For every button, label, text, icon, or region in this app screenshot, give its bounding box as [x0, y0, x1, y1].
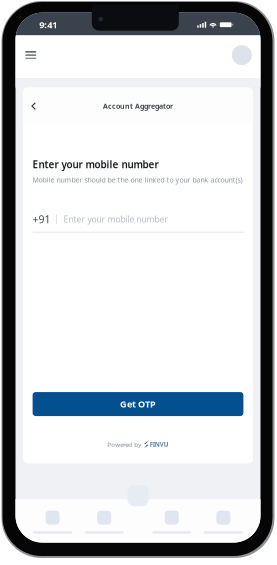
staticText: +91 [33, 212, 51, 226]
button[interactable]: Accounts [78, 511, 130, 534]
staticText: Enter your mobile number [33, 158, 159, 171]
button[interactable]: Profile [198, 511, 249, 534]
button[interactable]: Profile [229, 42, 255, 68]
staticText: Account Aggregator [103, 101, 173, 111]
staticText: Get OTP [120, 398, 156, 410]
button[interactable]: Home [27, 511, 78, 534]
staticText: Powered by [107, 440, 141, 449]
staticText: FINVU [150, 440, 169, 449]
button[interactable]: Cards [146, 511, 198, 534]
button[interactable]: Back [26, 96, 42, 116]
button[interactable]: Scan [127, 485, 148, 506]
button[interactable]: Get OTP [33, 392, 243, 416]
staticText: Mobile number should be the one linked t… [33, 175, 243, 184]
staticText: Enter your mobile number [63, 213, 168, 225]
staticText: 9:41 [39, 18, 57, 31]
button[interactable]: Menu [20, 42, 42, 68]
